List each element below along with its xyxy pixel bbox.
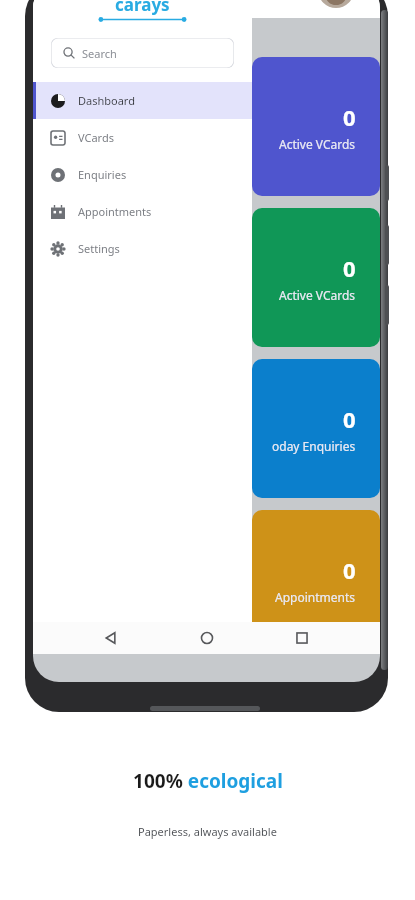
- staticText: Appointments: [78, 204, 152, 219]
- staticText: 0: [343, 555, 356, 585]
- button[interactable]: Search: [51, 38, 234, 68]
- button[interactable]: 0: [252, 510, 380, 649]
- staticText: Settings: [78, 241, 120, 256]
- staticText: 0: [343, 253, 356, 283]
- button[interactable]: VCards: [33, 119, 252, 156]
- staticText: Enquiries: [78, 167, 127, 182]
- staticText: 0: [343, 404, 356, 434]
- button[interactable]: Back: [99, 626, 123, 650]
- staticText: Paperless, always available: [138, 824, 277, 839]
- button[interactable]: 0: [252, 57, 380, 196]
- staticText: Appointments: [275, 589, 356, 605]
- staticText: carays: [115, 0, 170, 16]
- button[interactable]: 0: [252, 359, 380, 498]
- staticText: oday Enquiries: [272, 438, 356, 454]
- button[interactable]: Settings: [33, 230, 252, 267]
- staticText: 0: [343, 102, 356, 132]
- button[interactable]: Recents: [290, 626, 314, 650]
- staticText: VCards: [78, 130, 114, 145]
- staticText: 100% ecological: [133, 768, 283, 794]
- staticText: Active VCards: [279, 287, 356, 303]
- button[interactable]: Home: [195, 626, 219, 650]
- button[interactable]: Enquiries: [33, 156, 252, 193]
- staticText: Search: [82, 46, 117, 61]
- button[interactable]: 0: [252, 208, 380, 347]
- button[interactable]: 100% ecological: [0, 768, 415, 794]
- button[interactable]: Appointments: [33, 193, 252, 230]
- staticText: Dashboard: [78, 93, 135, 108]
- staticText: Active VCards: [279, 136, 356, 152]
- button[interactable]: Dashboard: [33, 82, 252, 119]
- button[interactable]: Profile: [318, 0, 354, 8]
